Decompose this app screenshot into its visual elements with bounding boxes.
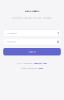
staticText: Sign In <box>28 50 35 53</box>
staticText: Username <box>6 32 16 35</box>
button[interactable]: Reset <box>38 67 43 70</box>
staticText: Not a member? <box>17 62 33 65</box>
staticText: Hello Again! <box>24 9 39 12</box>
staticText: Reset <box>38 67 43 70</box>
staticText: Password <box>6 40 15 43</box>
button[interactable]: Register now <box>34 62 47 65</box>
staticText: Register now <box>34 62 47 65</box>
staticText: Forgot password? <box>21 67 38 70</box>
button[interactable]: Sign In <box>3 48 61 55</box>
staticText: Welcome back you've been missed! <box>12 16 52 19</box>
